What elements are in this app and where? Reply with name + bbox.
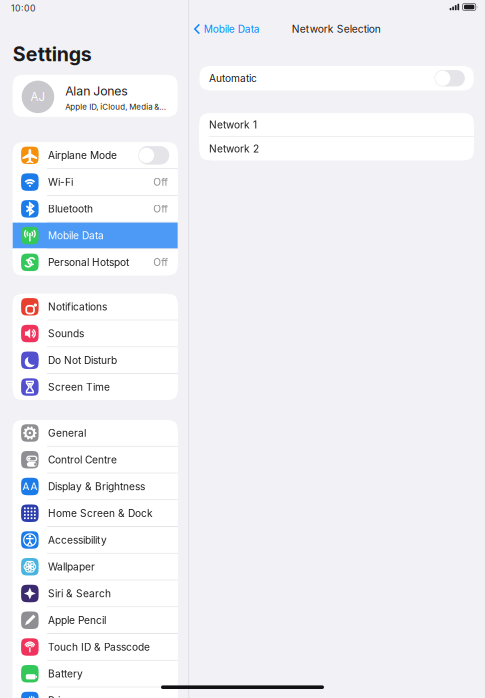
- button[interactable]: Wi-Fi: [13, 169, 178, 195]
- staticText: Home Screen & Dock: [48, 507, 153, 519]
- button[interactable]: Automatic: [199, 66, 474, 90]
- staticText: Battery: [48, 668, 83, 680]
- button[interactable]: AJ: [13, 75, 178, 117]
- staticText: Display & Brightness: [48, 480, 145, 493]
- button[interactable]: Battery: [13, 661, 178, 687]
- button[interactable]: Airplane Mode: [13, 142, 178, 168]
- staticText: Network 1: [209, 119, 257, 131]
- button[interactable]: Apple Pencil: [13, 607, 178, 633]
- staticText: Settings: [13, 42, 92, 66]
- staticText: Control Centre: [48, 454, 117, 466]
- staticText: Wallpaper: [48, 561, 95, 573]
- staticText: Automatic: [209, 72, 257, 84]
- button[interactable]: Privacy: [13, 687, 178, 698]
- staticText: AJ: [30, 90, 45, 104]
- button[interactable]: Bluetooth: [13, 196, 178, 222]
- staticText: Privacy: [48, 694, 84, 698]
- staticText: Notifications: [48, 301, 107, 313]
- staticText: Screen Time: [48, 381, 110, 393]
- button[interactable]: Mobile Data: [13, 223, 178, 248]
- button[interactable]: General: [13, 420, 178, 446]
- staticText: Touch ID & Passcode: [48, 641, 150, 653]
- staticText: Off: [153, 203, 168, 215]
- button[interactable]: Home Screen & Dock: [13, 500, 178, 526]
- staticText: Sounds: [48, 327, 84, 340]
- button[interactable]: Do Not Disturb: [13, 347, 178, 373]
- staticText: Mobile Data: [204, 23, 260, 35]
- button[interactable]: Network 2: [199, 137, 474, 160]
- button[interactable]: Accessibility: [13, 527, 178, 553]
- staticText: Apple Pencil: [48, 614, 106, 626]
- staticText: Alan Jones: [65, 84, 127, 98]
- button[interactable]: Mobile Data: [189, 23, 260, 35]
- staticText: 10:00: [11, 3, 36, 14]
- staticText: Accessibility: [48, 534, 107, 546]
- button[interactable]: Wallpaper: [13, 554, 178, 580]
- staticText: Bluetooth: [48, 203, 93, 215]
- staticText: Personal Hotspot: [48, 256, 129, 268]
- button[interactable]: Notifications: [13, 294, 178, 320]
- button[interactable]: Siri & Search: [13, 580, 178, 606]
- staticText: AA: [22, 480, 37, 493]
- staticText: Off: [153, 176, 168, 188]
- button[interactable]: AA: [13, 473, 178, 499]
- button[interactable]: Sounds: [13, 321, 178, 346]
- staticText: Do Not Disturb: [48, 354, 117, 366]
- button[interactable]: Control Centre: [13, 447, 178, 473]
- staticText: Mobile Data: [48, 229, 104, 242]
- button[interactable]: Touch ID & Passcode: [13, 634, 178, 660]
- button[interactable]: Network 1: [199, 113, 474, 136]
- button[interactable]: Screen Time: [13, 374, 178, 400]
- staticText: Network Selection: [292, 23, 381, 35]
- staticText: Siri & Search: [48, 587, 111, 600]
- staticText: Airplane Mode: [48, 149, 117, 161]
- staticText: Apple ID, iCloud, Media &…: [65, 102, 166, 111]
- staticText: Wi-Fi: [48, 176, 73, 188]
- staticText: General: [48, 427, 86, 439]
- button[interactable]: Personal Hotspot: [13, 249, 178, 275]
- staticText: Network 2: [209, 143, 259, 155]
- staticText: Off: [153, 256, 168, 268]
